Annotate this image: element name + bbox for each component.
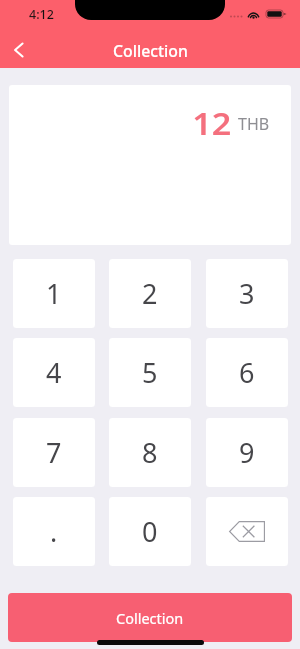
staticText: 5 [142,354,158,391]
button[interactable]: Backspace [206,497,288,566]
button[interactable]: 6 [206,338,288,407]
button[interactable]: 5 [109,338,191,407]
staticText: 4:12 [29,6,54,23]
button[interactable]: 1 [13,259,95,328]
staticText: 6 [239,354,255,391]
staticText: 7 [46,434,62,471]
button[interactable]: Collection [8,593,292,642]
staticText: . [50,513,58,550]
staticText: 12 [192,102,232,144]
staticText: Collection [116,608,184,628]
staticText: 8 [142,434,158,471]
button[interactable]: 3 [206,259,288,328]
staticText: THB [238,113,270,135]
button[interactable]: Back [0,30,40,68]
staticText: 3 [239,275,255,312]
staticText: 0 [142,513,158,550]
staticText: Collection [113,40,188,62]
staticText: 4 [46,354,62,391]
button[interactable]: 4 [13,338,95,407]
button[interactable]: 2 [109,259,191,328]
staticText: 9 [239,434,255,471]
button[interactable]: 9 [206,418,288,487]
button[interactable]: 0 [109,497,191,566]
button[interactable]: 7 [13,418,95,487]
button[interactable]: . [13,497,95,566]
staticText: 2 [142,275,158,312]
button[interactable]: 8 [109,418,191,487]
staticText: 1 [46,275,62,312]
